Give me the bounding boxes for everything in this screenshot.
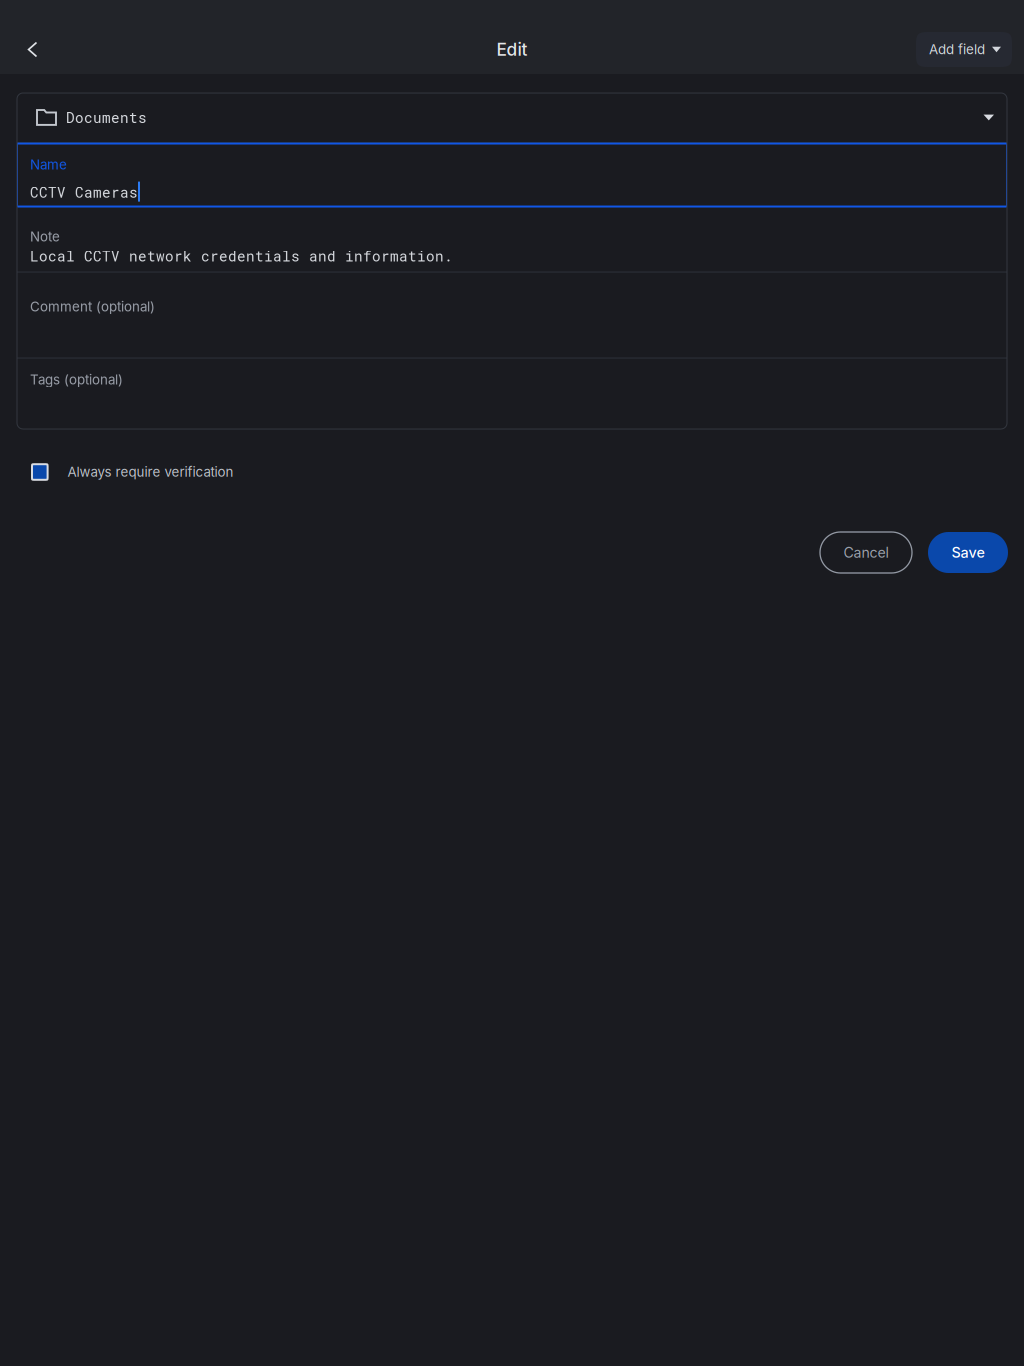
button[interactable]: Save <box>928 532 1008 573</box>
staticText: Tags (optional) <box>30 371 123 388</box>
staticText: Add field <box>929 41 985 57</box>
staticText: Note <box>30 228 60 245</box>
staticText: Comment (optional) <box>30 298 155 315</box>
button[interactable]: Always require verification <box>0 458 234 486</box>
staticText: Local CCTV network credentials and infor… <box>30 247 453 265</box>
button[interactable]: Back <box>0 25 66 74</box>
button[interactable]: Cancel <box>820 532 912 573</box>
button[interactable]: Documents <box>17 92 1007 142</box>
staticText: Documents <box>66 108 147 127</box>
staticText: Name <box>30 156 67 173</box>
staticText: CCTV Cameras <box>30 183 138 202</box>
staticText: Cancel <box>843 544 888 561</box>
staticText: Edit <box>496 39 527 60</box>
staticText: Always require verification <box>68 464 234 480</box>
button[interactable]: Add field <box>916 32 1012 67</box>
staticText: Save <box>951 544 984 561</box>
